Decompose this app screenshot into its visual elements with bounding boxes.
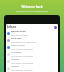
button[interactable]: Alice Chen: [6, 37, 58, 44]
staticText: Alice Chen: [11, 37, 22, 40]
button[interactable]: Newsletter: [6, 51, 58, 58]
staticText: Here is what happened: [11, 48, 33, 51]
staticText: Updates: [11, 65, 20, 68]
staticText: Sent you the deck: [11, 34, 28, 37]
staticText: Your order has shipped: [11, 62, 33, 65]
staticText: Weekly digest: [11, 44, 25, 47]
staticText: Everything in one simple place: [5, 10, 59, 13]
staticText: Inbox: [7, 25, 17, 29]
button[interactable]: Meeting notes: [6, 30, 58, 37]
staticText: Re: Design sync tomorrow: [11, 41, 36, 44]
button[interactable]: Weekly digest: [6, 44, 58, 51]
staticText: Top stories of the week: [11, 55, 33, 58]
staticText: Receipts: [11, 58, 20, 61]
button[interactable]: Account: [54, 26, 57, 29]
staticText: Welcome back: [5, 5, 59, 9]
staticText: New features available: [11, 69, 33, 72]
button[interactable]: Receipts: [6, 58, 58, 65]
staticText: Newsletter: [11, 51, 22, 54]
staticText: Meeting notes: [11, 30, 26, 33]
button[interactable]: Updates: [6, 65, 58, 72]
